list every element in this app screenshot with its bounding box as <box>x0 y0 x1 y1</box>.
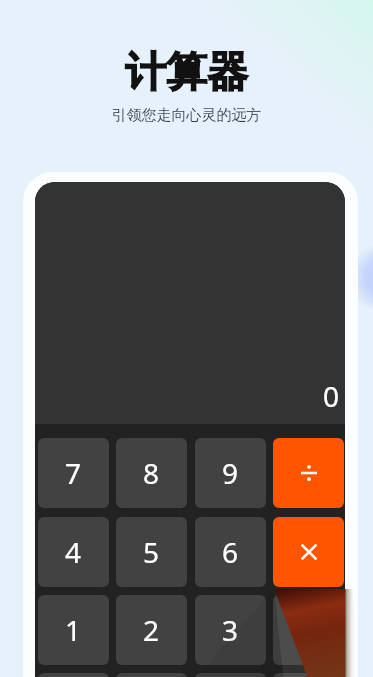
button[interactable]: 6 <box>195 517 266 587</box>
button[interactable]: 0 <box>116 673 187 677</box>
button[interactable] <box>273 517 344 587</box>
button[interactable] <box>273 673 344 677</box>
staticText: 7 <box>65 454 82 492</box>
button[interactable]: 5 <box>116 517 187 587</box>
button[interactable] <box>273 595 344 665</box>
button[interactable]: 2 <box>116 595 187 665</box>
staticText: 8 <box>143 454 160 492</box>
staticText: 计算器 <box>0 47 373 99</box>
staticText: 3 <box>222 611 239 649</box>
staticText: 2 <box>143 611 160 649</box>
staticText: 1 <box>65 611 82 649</box>
staticText: 0 <box>323 377 340 415</box>
staticText: 4 <box>65 533 82 571</box>
button[interactable]: 1 <box>38 595 109 665</box>
staticText: 引领您走向心灵的远方 <box>0 106 373 125</box>
staticText: 6 <box>222 533 239 571</box>
button[interactable]: 4 <box>38 517 109 587</box>
button[interactable] <box>38 673 109 677</box>
staticText: 9 <box>222 454 239 492</box>
button[interactable] <box>273 438 344 508</box>
staticText: 5 <box>143 533 160 571</box>
button[interactable]: 8 <box>116 438 187 508</box>
button[interactable]: 3 <box>195 595 266 665</box>
button[interactable]: 9 <box>195 438 266 508</box>
button[interactable]: 7 <box>38 438 109 508</box>
button[interactable]: . <box>195 673 266 677</box>
